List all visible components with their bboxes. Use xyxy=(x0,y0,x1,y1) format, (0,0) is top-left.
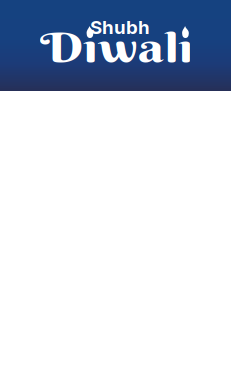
staticText: Dıwalı xyxy=(40,22,161,73)
staticText: Shubh xyxy=(90,16,150,39)
